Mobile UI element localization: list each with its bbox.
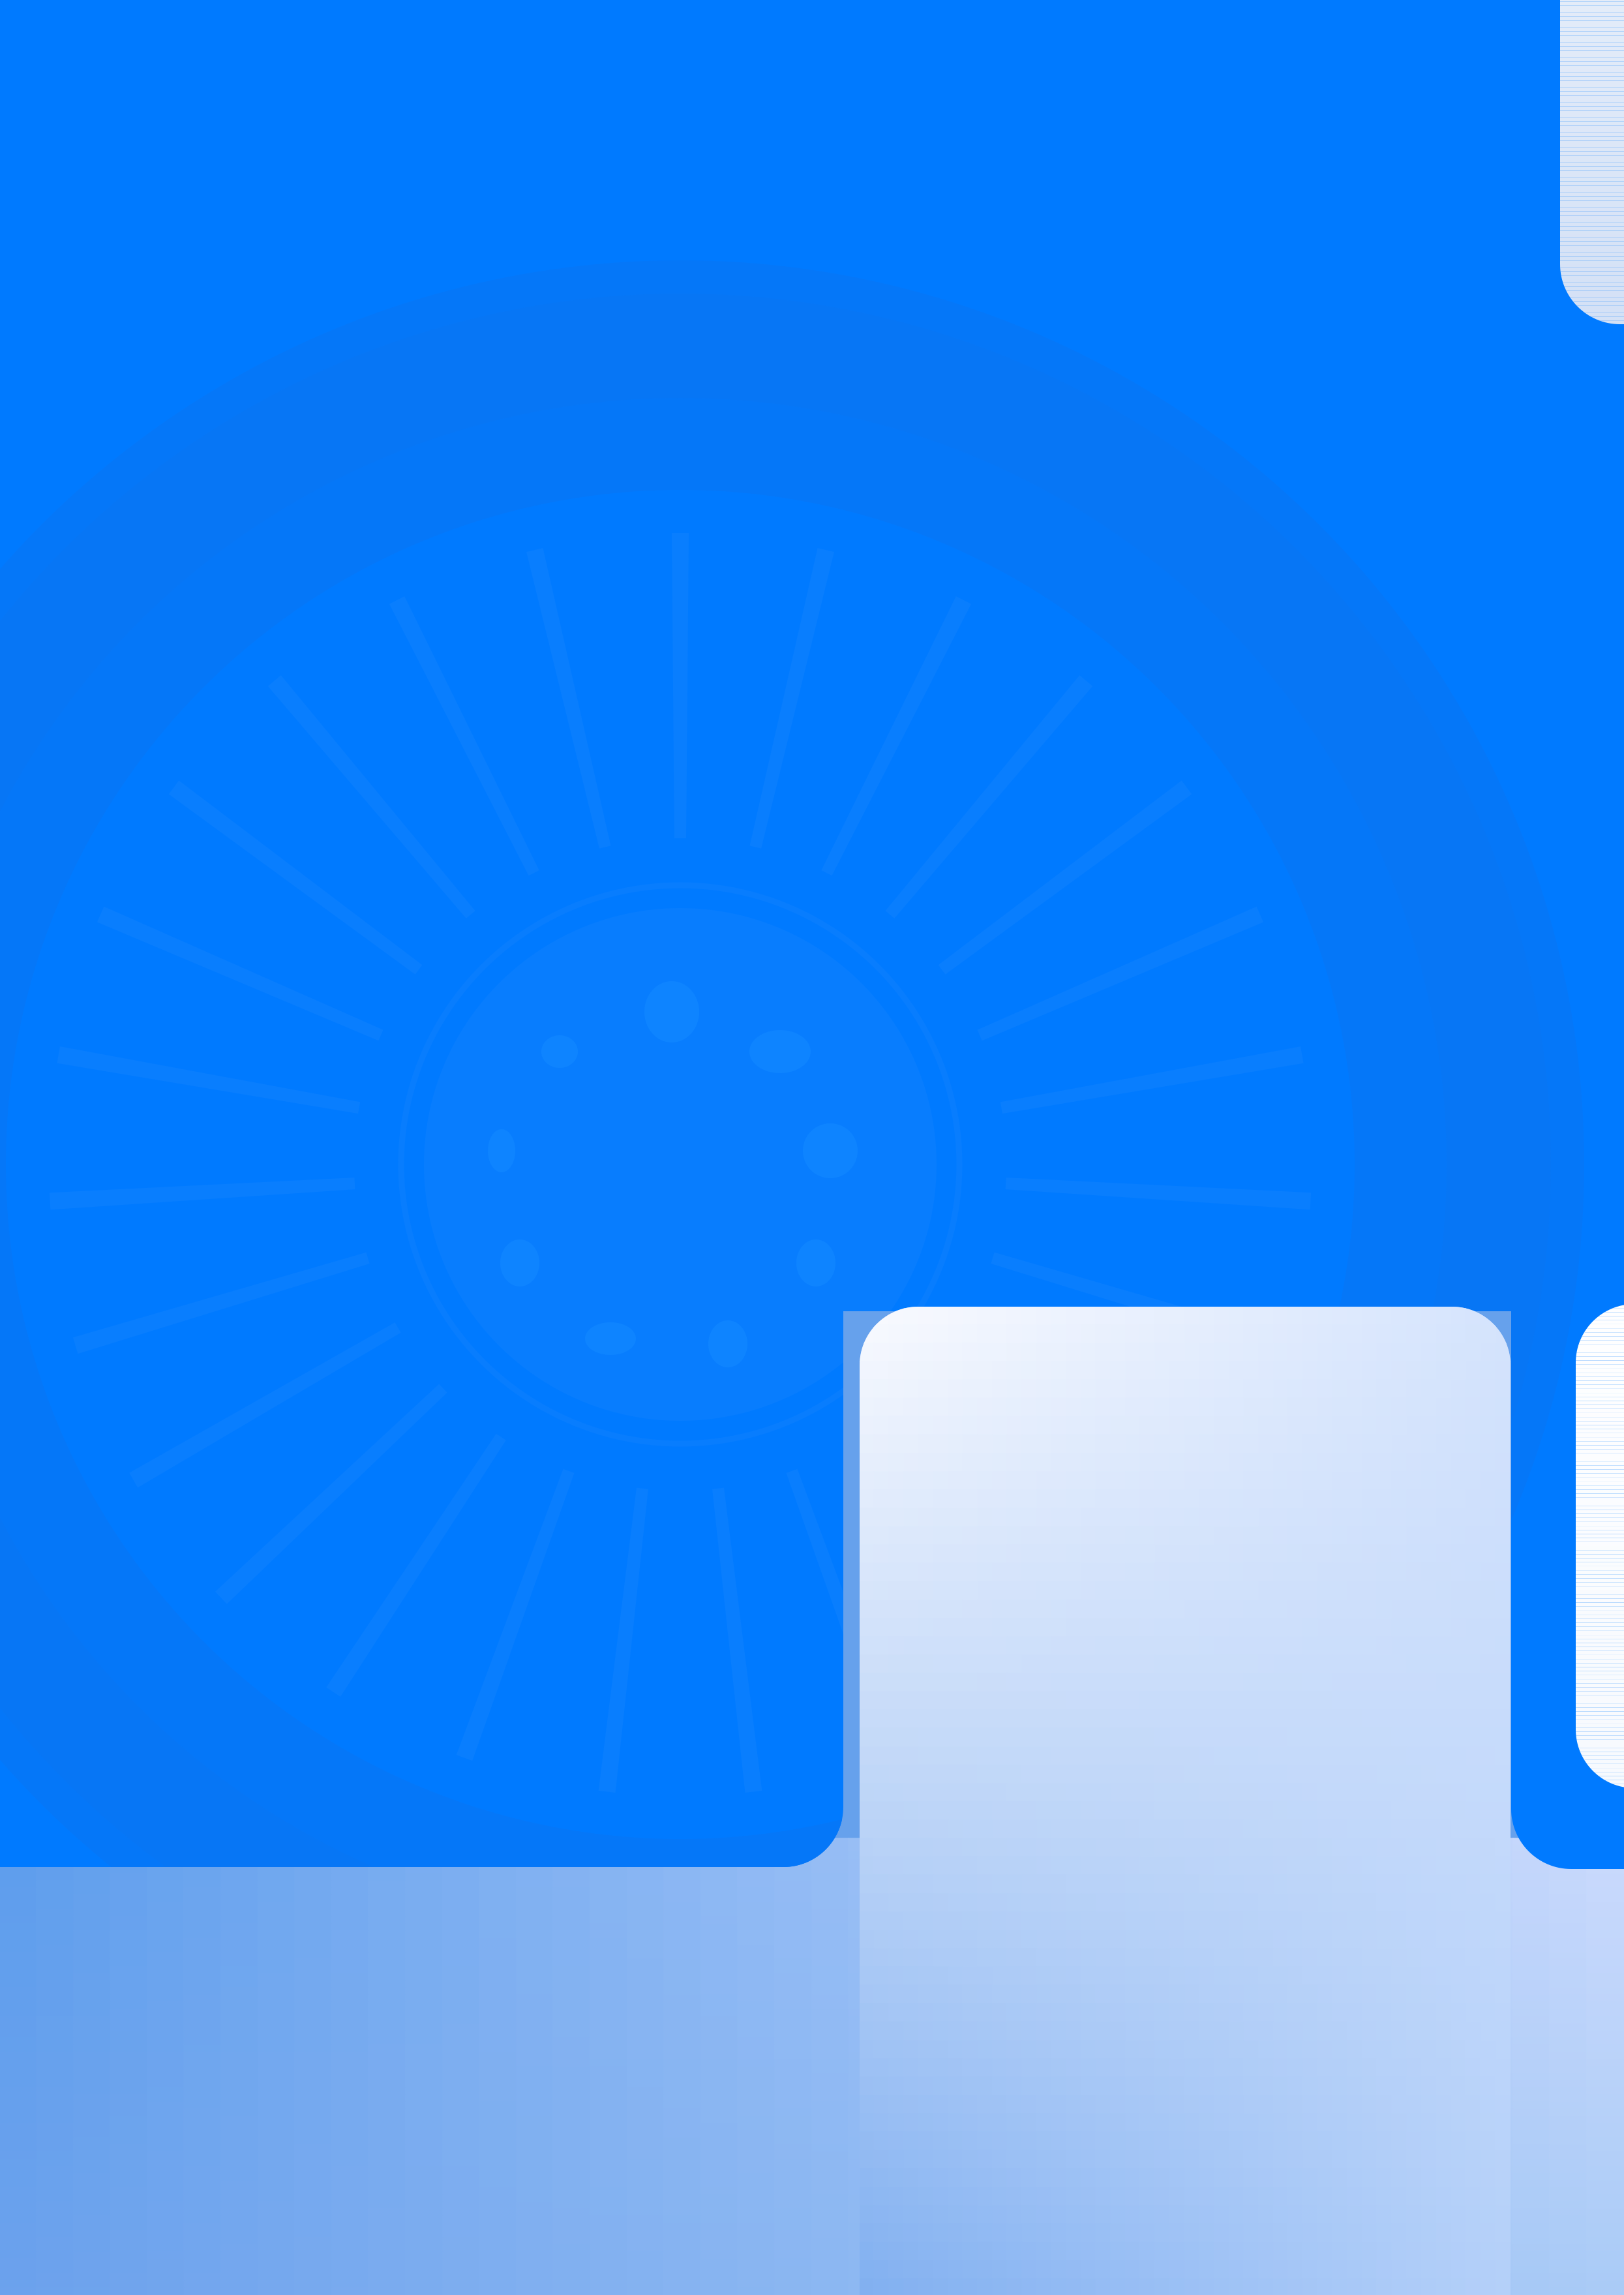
- button[interactable]: Pollen forecast: [0, 0, 1624, 2295]
- button[interactable]: Air quality: [860, 1307, 1511, 2295]
- button[interactable]: Top tile: [1560, 0, 1624, 324]
- button[interactable]: Lower tile: [1576, 1304, 1624, 1788]
